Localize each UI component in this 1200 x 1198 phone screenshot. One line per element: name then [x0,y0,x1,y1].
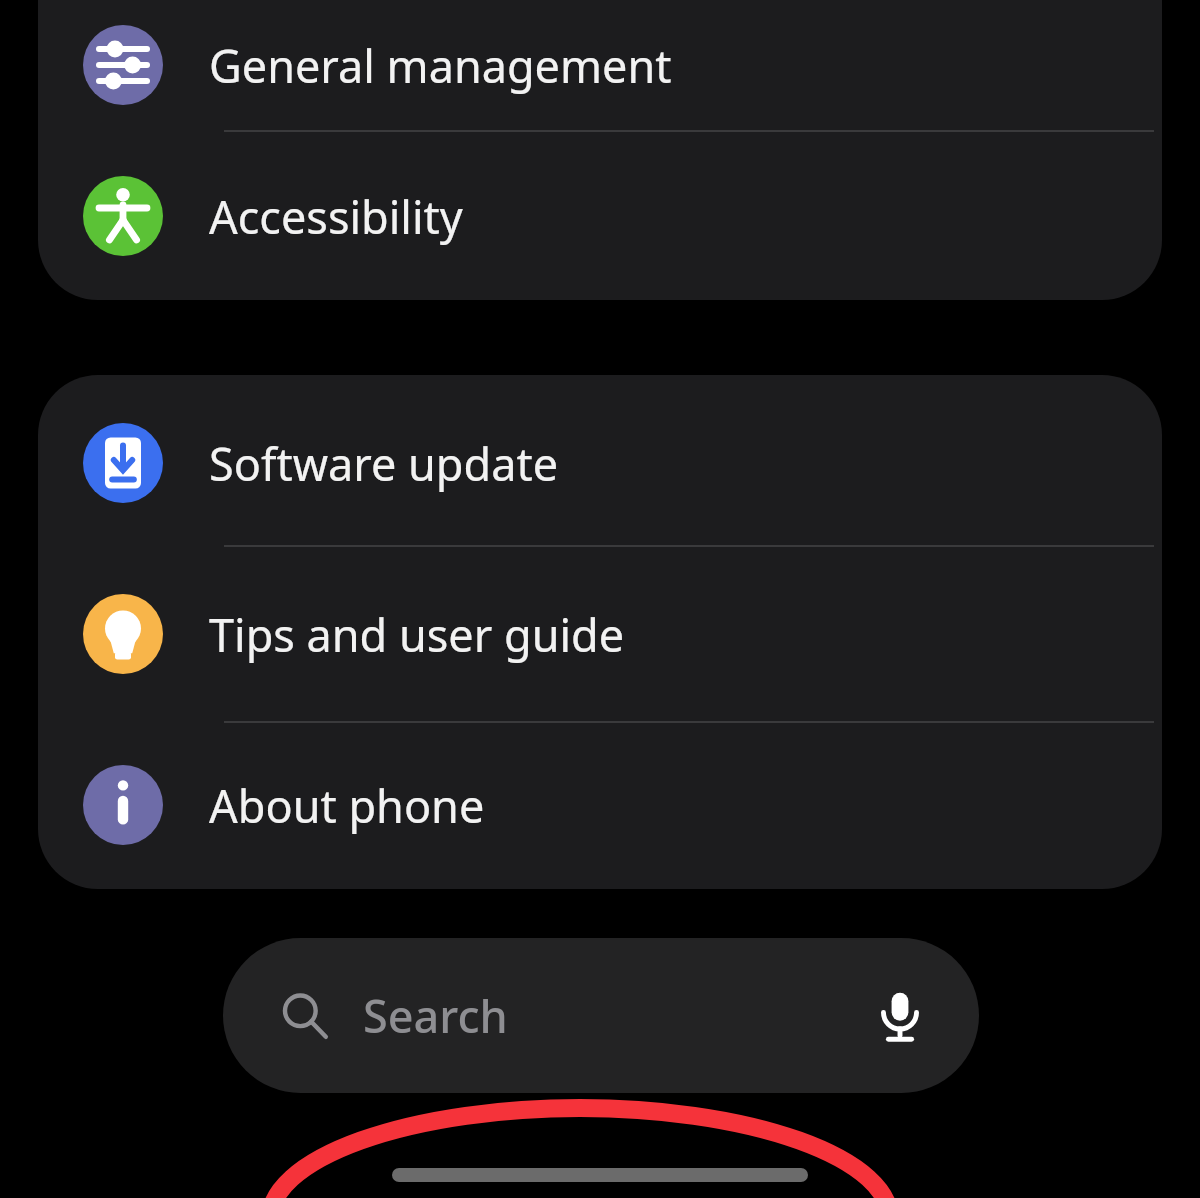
staticText: Software update [209,433,559,494]
staticText: General management [209,35,672,96]
button[interactable]: Accessibility [38,132,1162,300]
staticText: Search [363,985,871,1046]
button[interactable]: About phone [38,723,1162,887]
staticText: About phone [209,775,485,836]
button[interactable]: Software update [38,381,1162,545]
button[interactable]: Search [223,938,979,1093]
button[interactable]: Tips and user guide [38,547,1162,721]
button[interactable]: Voice search [871,987,929,1045]
staticText: Tips and user guide [209,604,625,665]
button[interactable]: General management [38,0,1162,130]
staticText: Accessibility [209,186,463,247]
